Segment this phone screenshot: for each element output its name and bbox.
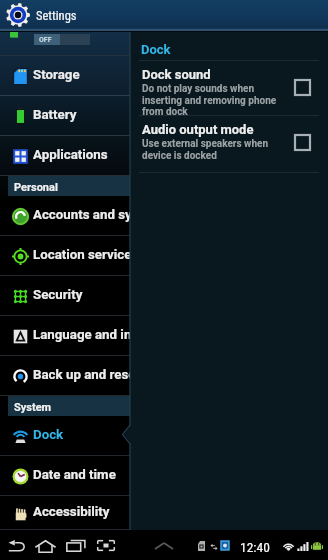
staticText: Accessibility [33, 504, 110, 520]
button[interactable]: Applications [0, 136, 130, 176]
staticText: Dock [141, 42, 171, 57]
staticText: Security [33, 287, 83, 303]
button[interactable]: Accounts and sync [0, 196, 130, 236]
button[interactable]: Home [31, 530, 60, 560]
staticText: Do not play sounds when inserting and re… [142, 83, 277, 116]
button[interactable]: OFF [0, 32, 130, 55]
button[interactable]: Dock sound [130, 61, 328, 115]
button[interactable]: Security [0, 276, 130, 316]
staticText: OFF [39, 36, 52, 44]
staticText: Dock [33, 427, 64, 443]
button[interactable]: Storage [0, 56, 130, 96]
button[interactable]: Accessibility [0, 496, 130, 530]
button[interactable]: Battery [0, 96, 130, 136]
staticText: Location services [33, 247, 130, 263]
button[interactable]: Back [4, 530, 29, 560]
staticText: Use external speakers when device is doc… [142, 138, 269, 161]
staticText: Settings [36, 8, 77, 23]
button[interactable]: Language and input [0, 316, 130, 356]
staticText: 12:40 [240, 539, 270, 555]
staticText: Date and time [33, 467, 116, 483]
button[interactable]: Date and time [0, 456, 130, 496]
button[interactable]: Back up and reset [0, 356, 130, 396]
staticText: Dock sound [142, 67, 211, 82]
staticText: Back up and reset [33, 367, 130, 383]
staticText: Battery [33, 107, 77, 123]
staticText: Storage [33, 67, 80, 83]
staticText: Accounts and sync [33, 207, 130, 223]
button[interactable]: Location services [0, 236, 130, 276]
staticText: System [14, 401, 52, 414]
staticText: Personal [14, 181, 58, 194]
staticText: Applications [33, 147, 108, 163]
button[interactable]: Recents [62, 530, 91, 560]
button[interactable]: Audio output mode [130, 116, 328, 172]
staticText: Language and input [33, 327, 130, 343]
staticText: Audio output mode [142, 122, 254, 137]
button[interactable]: Screenshot [93, 530, 119, 560]
button[interactable]: Dock [0, 416, 130, 456]
